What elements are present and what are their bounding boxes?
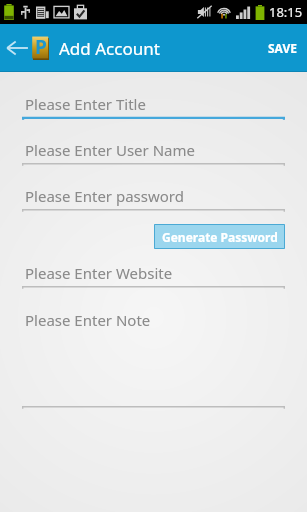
button[interactable]: Please Enter Note <box>22 307 285 409</box>
staticText: Please Enter Title <box>25 94 146 114</box>
button[interactable]: Generate Password <box>154 224 285 249</box>
staticText: P <box>35 34 47 60</box>
staticText: Please Enter Website <box>25 263 173 283</box>
staticText: Please Enter password <box>25 186 184 206</box>
staticText: SAVE <box>268 40 297 56</box>
staticText: Please Enter Note <box>25 310 151 330</box>
button[interactable]: Please Enter Website <box>22 261 285 289</box>
button[interactable]: Back <box>0 31 32 65</box>
button[interactable]: Please Enter password <box>22 184 285 212</box>
button[interactable]: SAVE <box>258 30 307 66</box>
staticText: Please Enter User Name <box>25 140 195 160</box>
staticText: 18:15 <box>269 3 303 21</box>
staticText: Generate Password <box>162 229 278 245</box>
button[interactable]: Please Enter User Name <box>22 138 285 166</box>
button[interactable]: Please Enter Title <box>22 92 285 120</box>
staticText: Add Account <box>59 37 160 60</box>
